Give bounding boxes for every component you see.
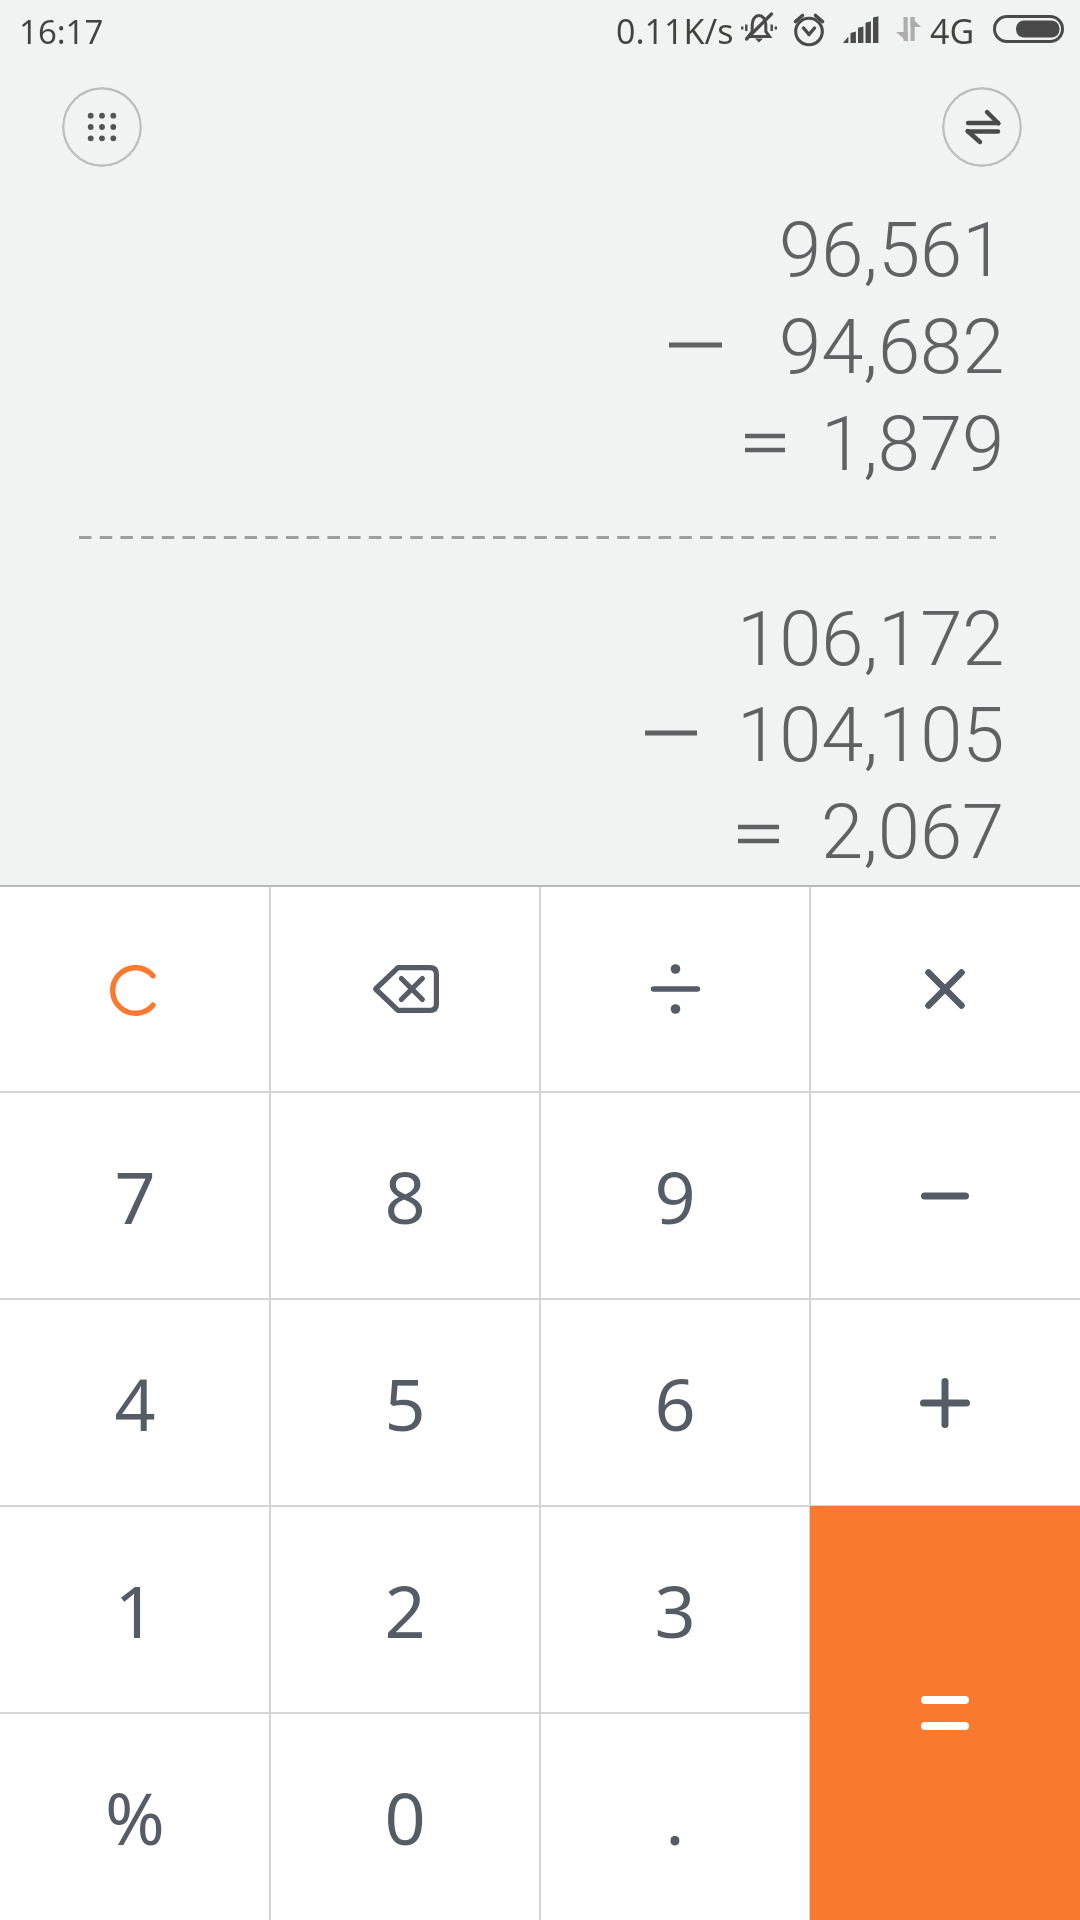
staticText: 9: [654, 1147, 696, 1245]
button[interactable]: .: [540, 1713, 810, 1920]
staticText: 0.11K/s: [616, 8, 734, 54]
button[interactable]: %: [0, 1713, 270, 1920]
staticText: 2: [384, 1561, 426, 1659]
staticText: 1,879: [821, 399, 1005, 488]
button[interactable]: Clear: [0, 885, 270, 1092]
button[interactable]: 7: [0, 1092, 270, 1299]
button[interactable]: 5: [270, 1299, 540, 1506]
staticText: 0: [384, 1768, 426, 1866]
staticText: 16:17: [19, 9, 104, 54]
button[interactable]: 2: [270, 1506, 540, 1713]
button[interactable]: Multiply: [810, 885, 1080, 1092]
staticText: .: [665, 1768, 685, 1866]
button[interactable]: Divide: [540, 885, 810, 1092]
staticText: 104,105: [737, 690, 1005, 779]
staticText: 94,682: [779, 302, 1005, 391]
staticText: 96,561: [779, 205, 1005, 294]
button[interactable]: Unit converter: [942, 87, 1022, 167]
button[interactable]: Minus: [810, 1092, 1080, 1299]
button[interactable]: 1: [0, 1506, 270, 1713]
staticText: 2,067: [821, 787, 1005, 876]
staticText: 5: [384, 1354, 426, 1452]
button[interactable]: Plus: [810, 1299, 1080, 1506]
staticText: 106,172: [737, 594, 1005, 683]
staticText: 1: [114, 1561, 156, 1659]
button[interactable]: 6: [540, 1299, 810, 1506]
staticText: 7: [114, 1147, 156, 1245]
button[interactable]: 9: [540, 1092, 810, 1299]
staticText: 4: [114, 1354, 156, 1452]
staticText: 4G: [930, 8, 975, 54]
button[interactable]: 3: [540, 1506, 810, 1713]
button[interactable]: Equals: [810, 1506, 1080, 1920]
button[interactable]: 0: [270, 1713, 540, 1920]
button[interactable]: Backspace: [270, 885, 540, 1092]
button[interactable]: 4: [0, 1299, 270, 1506]
button[interactable]: Scientific keypad: [62, 87, 142, 167]
staticText: 8: [384, 1147, 426, 1245]
staticText: 3: [654, 1561, 696, 1659]
staticText: %: [105, 1768, 165, 1866]
button[interactable]: 8: [270, 1092, 540, 1299]
staticText: 6: [654, 1354, 696, 1452]
